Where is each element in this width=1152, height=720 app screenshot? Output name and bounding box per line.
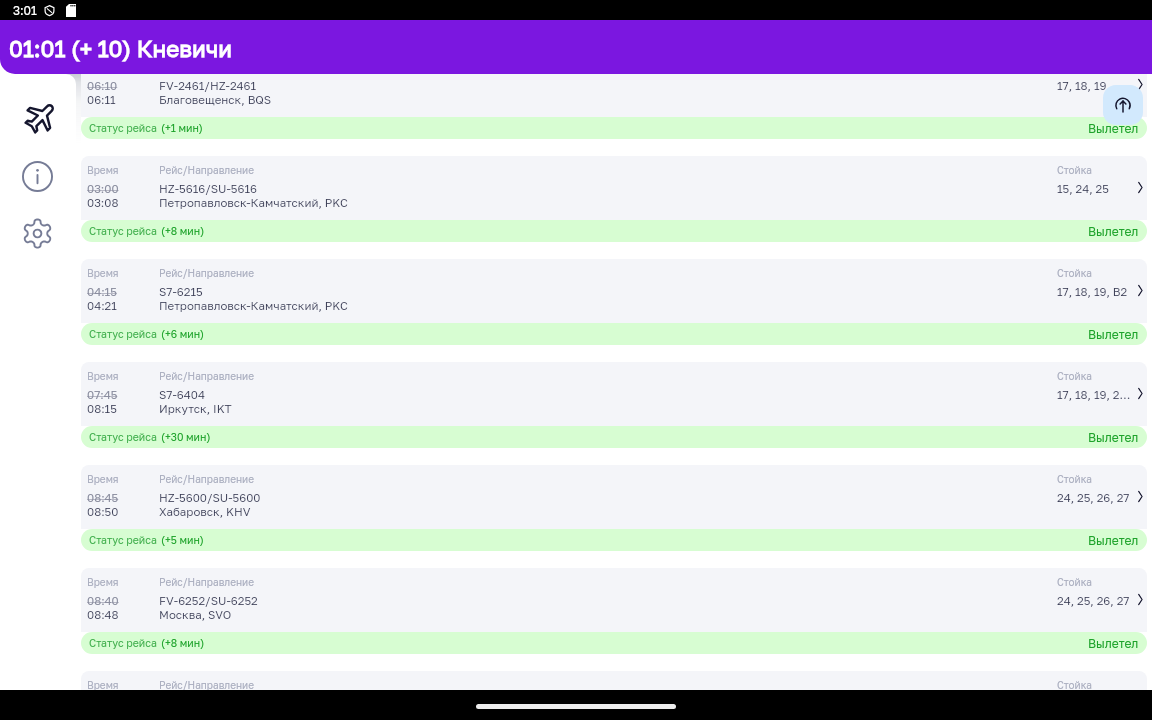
staticText: Рейс/Направление [159,164,254,176]
staticText: Хабаровск, KHV [159,505,251,519]
staticText: 01:01 (+ 10) Кневичи [9,35,232,62]
staticText: HZ-5600/SU-5600 [159,491,261,505]
button[interactable]: Время [81,568,1147,654]
staticText: (+1 мин) [161,122,203,135]
button[interactable]: Наверх [1103,85,1143,125]
staticText: 08:50 [87,505,119,519]
staticText: S7-6404 [159,388,205,402]
staticText: 17, 18, 19, 20, 21 [1057,388,1133,402]
staticText: HZ-5616/SU-5616 [159,182,257,196]
staticText: 03:08 [87,196,119,210]
staticText: (+6 мин) [161,328,205,341]
staticText: FV-2461/HZ-2461 [159,79,257,93]
staticText: Время [87,576,119,588]
button[interactable]: Информация [11,147,67,204]
staticText: 03:00 [87,182,119,196]
staticText: Статус рейса [89,225,157,238]
staticText: 17, 18, 19 [1057,79,1133,93]
staticText: 24, 25, 26, 27 [1057,491,1133,505]
staticText: Вылетел [1088,327,1139,341]
staticText: (+5 мин) [161,534,204,547]
staticText: Рейс/Направление [159,473,254,485]
staticText: 07:45 [87,388,118,402]
staticText: FV-6252/SU-6252 [159,594,258,608]
button[interactable]: Время [81,671,1147,690]
staticText: Статус рейса [89,637,157,650]
staticText: Вылетел [1088,430,1139,444]
staticText: Стойка [1057,370,1092,382]
button[interactable]: Время [81,74,1147,139]
button[interactable]: Рейсы [11,90,67,147]
staticText: Время [87,267,119,279]
staticText: Стойка [1057,679,1092,690]
staticText: 08:15 [87,402,117,416]
staticText: Благовещенск, BQS [159,93,272,107]
staticText: Вылетел [1088,533,1139,547]
staticText: 04:15 [87,285,117,299]
button[interactable]: Время [81,465,1147,551]
staticText: 3:01 [13,3,37,17]
staticText: Время [87,679,119,690]
staticText: Стойка [1057,164,1092,176]
staticText: Статус рейса [89,122,157,135]
staticText: 06:11 [87,93,116,107]
button[interactable]: Время [81,156,1147,242]
staticText: Время [87,473,119,485]
staticText: (+8 мин) [161,637,205,650]
staticText: Рейс/Направление [159,370,254,382]
staticText: Статус рейса [89,328,157,341]
staticText: Вылетел [1088,636,1139,650]
staticText: Вылетел [1088,121,1139,135]
staticText: Статус рейса [89,431,157,444]
staticText: Петропавловск-Камчатский, PKC [159,299,348,313]
staticText: 24, 25, 26, 27 [1057,594,1133,608]
staticText: S7-6215 [159,285,203,299]
staticText: (+8 мин) [161,225,205,238]
staticText: Рейс/Направление [159,576,254,588]
staticText: Иркутск, IKT [159,402,232,416]
staticText: 08:40 [87,594,119,608]
staticText: 06:10 [87,79,118,93]
staticText: Рейс/Направление [159,267,254,279]
staticText: 04:21 [87,299,117,313]
staticText: Время [87,164,119,176]
button[interactable]: Время [81,259,1147,345]
staticText: Петропавловск-Камчатский, PKC [159,196,348,210]
button[interactable]: Время [81,362,1147,448]
staticText: Стойка [1057,267,1092,279]
staticText: 08:48 [87,608,119,622]
staticText: Время [87,370,119,382]
staticText: 08:45 [87,491,119,505]
staticText: Рейс/Направление [159,679,254,690]
staticText: Статус рейса [89,534,157,547]
staticText: 17, 18, 19, B2 [1057,285,1133,299]
staticText: Москва, SVO [159,608,232,622]
staticText: Стойка [1057,473,1092,485]
staticText: Стойка [1057,576,1092,588]
button[interactable]: Настройки [11,204,67,261]
staticText: Вылетел [1088,224,1139,238]
staticText: (+30 мин) [161,431,211,444]
staticText: 15, 24, 25 [1057,182,1133,196]
